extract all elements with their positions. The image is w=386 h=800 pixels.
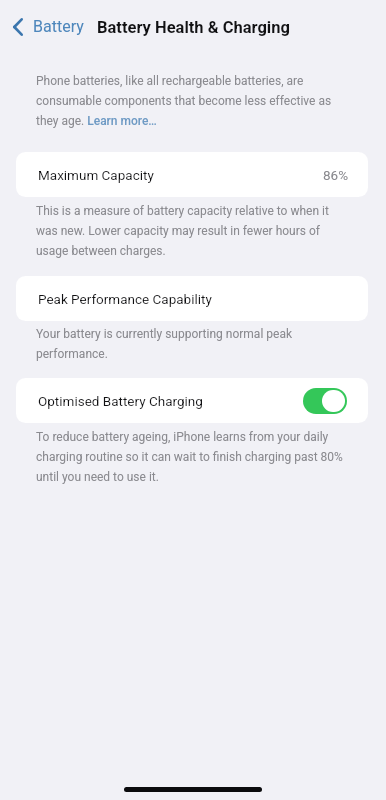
staticText: Your battery is currently supporting nor… <box>36 323 348 363</box>
staticText: 86% <box>323 167 349 183</box>
staticText: Optimised Battery Charging <box>38 393 203 409</box>
staticText: Maximum Capacity <box>38 167 154 183</box>
button[interactable]: Learn more about battery health <box>85 112 158 130</box>
button[interactable]: Maximum Capacity <box>16 152 368 197</box>
staticText: To reduce battery ageing, iPhone learns … <box>36 426 348 486</box>
button[interactable]: Optimised Battery Charging <box>16 378 368 423</box>
button[interactable]: Optimised Battery Charging toggle, on <box>303 388 347 414</box>
button[interactable]: Peak Performance Capability <box>16 276 368 321</box>
staticText: Peak Performance Capability <box>38 291 212 307</box>
staticText: Phone batteries, like all rechargeable b… <box>36 70 348 130</box>
staticText: Battery Health & Charging <box>97 18 290 37</box>
button[interactable]: Back to Battery <box>0 9 84 44</box>
staticText: Battery <box>33 17 84 36</box>
staticText: This is a measure of battery capacity re… <box>36 200 348 260</box>
